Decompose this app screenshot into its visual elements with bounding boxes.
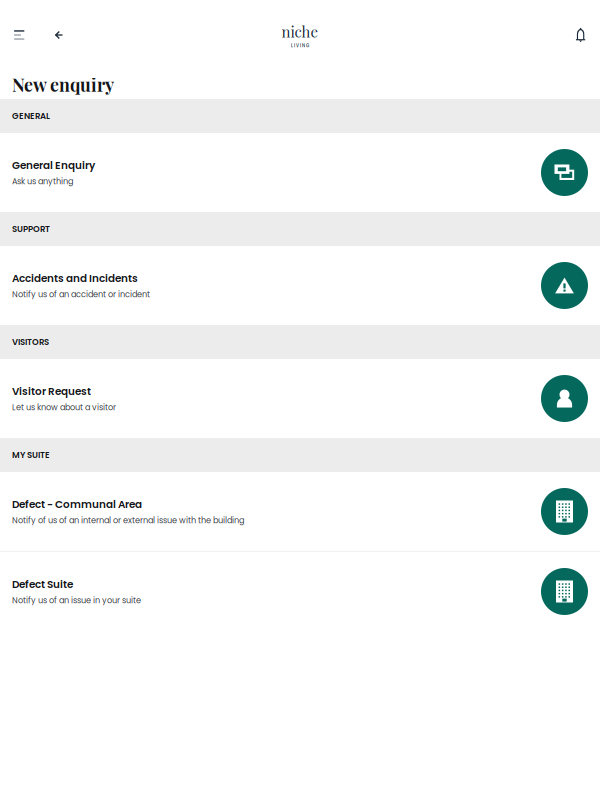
button[interactable]: Defect - Communal Area <box>0 472 600 551</box>
button[interactable]: General Enquiry <box>0 133 600 212</box>
staticText: MY SUITE <box>12 449 50 461</box>
staticText: Accidents and Incidents <box>12 271 138 286</box>
staticText: L I V I N G <box>291 43 309 49</box>
staticText: SUPPORT <box>12 223 50 235</box>
button[interactable]: Notifications <box>566 18 596 52</box>
staticText: Notify us of an issue in your suite <box>12 595 141 606</box>
staticText: Defect Suite <box>12 577 73 592</box>
button[interactable]: Defect Suite <box>0 552 600 631</box>
staticText: GENERAL <box>12 110 50 122</box>
staticText: General Enquiry <box>12 158 95 173</box>
staticText: Let us know about a visitor <box>12 402 116 413</box>
staticText: New enquiry <box>12 73 114 96</box>
staticText: Notify us of an accident or incident <box>12 289 150 300</box>
staticText: niche <box>281 21 318 41</box>
staticText: Defect - Communal Area <box>12 497 142 512</box>
staticText: Notify of us of an internal or external … <box>12 515 244 526</box>
button[interactable]: Accidents and Incidents <box>0 246 600 325</box>
staticText: VISITORS <box>12 336 49 348</box>
button[interactable]: Visitor Request <box>0 359 600 438</box>
button[interactable]: Back <box>44 18 74 52</box>
staticText: Visitor Request <box>12 384 91 399</box>
button[interactable]: Menu <box>4 18 34 52</box>
staticText: Ask us anything <box>12 176 73 187</box>
